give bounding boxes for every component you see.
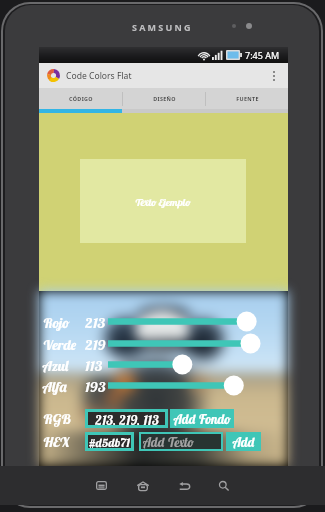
button[interactable]: Azul	[39, 354, 288, 375]
button[interactable]: DISEÑO	[123, 88, 205, 109]
staticText: CÓDIGO	[69, 95, 93, 102]
button[interactable]: Add Texto	[141, 434, 221, 449]
button[interactable]: Add Fondo	[170, 409, 234, 428]
button[interactable]: 213, 219, 113	[88, 412, 165, 425]
staticText: Azul	[43, 356, 69, 374]
button[interactable]: Rojo	[39, 311, 288, 332]
button[interactable]: Recents	[90, 466, 112, 505]
button[interactable]: Verde	[39, 333, 288, 354]
staticText: #d5db71	[89, 435, 130, 448]
staticText: FUENTE	[236, 95, 259, 102]
staticText: 213, 219, 113	[95, 412, 159, 425]
button[interactable]: More options	[263, 63, 284, 88]
staticText: 113	[85, 356, 103, 374]
staticText: Add Texto	[143, 434, 194, 449]
staticText: Alfa	[43, 377, 68, 395]
button[interactable]: CÓDIGO	[39, 88, 122, 109]
staticText: 219	[85, 335, 106, 353]
staticText: SAMSUNG	[132, 21, 193, 33]
button[interactable]: Search	[213, 466, 235, 505]
staticText: HEX	[43, 432, 70, 450]
button[interactable]: Back	[174, 466, 196, 505]
staticText: RGB	[43, 409, 71, 427]
button[interactable]: Home	[132, 466, 154, 505]
button[interactable]: FUENTE	[206, 88, 288, 109]
staticText: DISEÑO	[153, 95, 176, 102]
button[interactable]: Alfa	[39, 375, 288, 396]
staticText: 193	[85, 377, 106, 395]
button[interactable]: #d5db71	[88, 435, 131, 448]
button[interactable]: Add	[226, 432, 261, 451]
staticText: 7:45 AM	[245, 49, 280, 61]
staticText: Code Colors Flat	[66, 70, 132, 82]
staticText: 213	[85, 313, 106, 331]
staticText: Add Fondo	[174, 411, 231, 427]
staticText: Add	[233, 434, 255, 450]
staticText: Verde	[43, 335, 77, 353]
staticText: Texto Ejemplo	[135, 195, 191, 208]
staticText: Rojo	[43, 313, 70, 331]
